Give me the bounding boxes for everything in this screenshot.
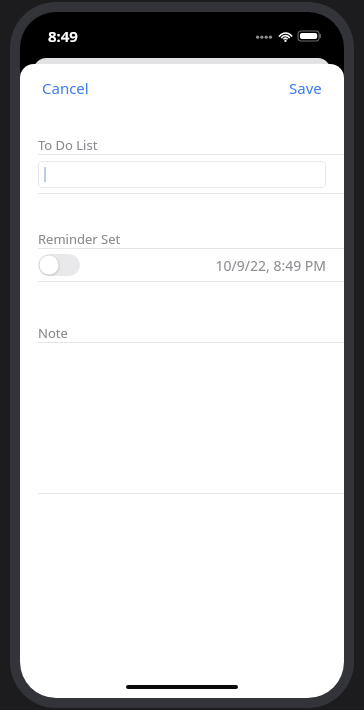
- staticText: To Do List: [38, 136, 98, 154]
- staticText: Save: [289, 78, 322, 98]
- button[interactable]: [38, 161, 326, 188]
- staticText: 8:49: [48, 26, 78, 46]
- staticText: Cancel: [42, 78, 89, 98]
- staticText: Note: [38, 324, 68, 342]
- button[interactable]: Cancel: [38, 74, 93, 102]
- staticText: 10/9/22, 8:49 PM: [215, 256, 326, 275]
- staticText: Reminder Set: [38, 230, 121, 248]
- button[interactable]: Save: [285, 74, 326, 102]
- button[interactable]: Reminder toggle, off: [38, 254, 80, 276]
